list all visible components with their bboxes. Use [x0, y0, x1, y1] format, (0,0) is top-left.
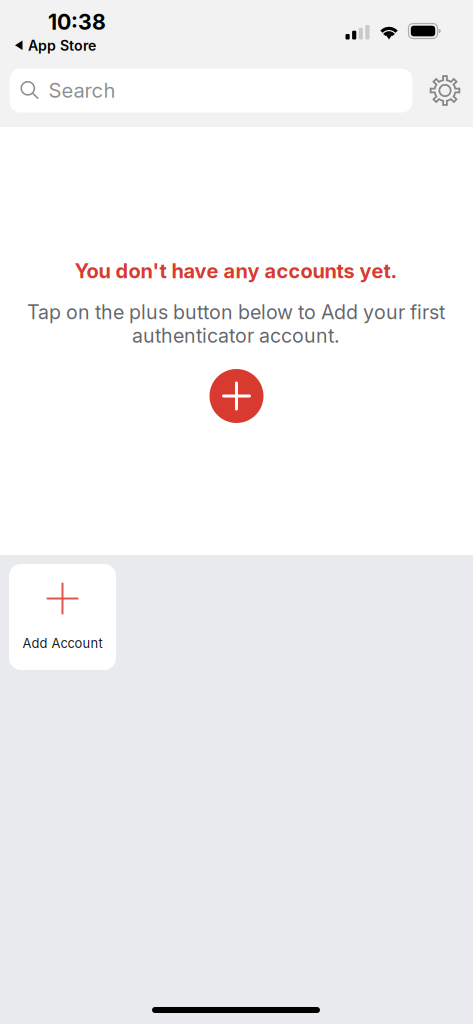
- staticText: authenticator account.: [132, 324, 340, 347]
- staticText: App Store: [28, 37, 96, 54]
- button[interactable]: App Store: [11, 35, 100, 56]
- staticText: Add Account: [22, 635, 102, 651]
- staticText: 10:38: [48, 9, 106, 35]
- staticText: Search: [48, 78, 115, 103]
- button[interactable]: Add account: [209, 369, 263, 423]
- staticText: Tap on the plus button below to Add your…: [27, 300, 445, 324]
- button[interactable]: Search: [9, 68, 412, 112]
- staticText: You don't have any accounts yet.: [74, 259, 397, 283]
- button[interactable]: Add Account: [9, 564, 116, 670]
- button[interactable]: Settings: [423, 68, 467, 112]
